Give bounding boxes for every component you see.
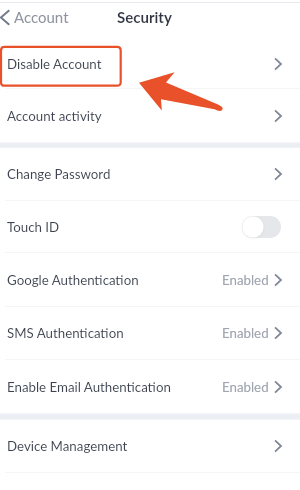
staticText: Google Authentication	[7, 272, 139, 288]
button[interactable]: Enable Email Authentication	[0, 360, 300, 413]
button[interactable]: SMS Authentication	[0, 307, 300, 359]
staticText: Security	[117, 8, 172, 26]
button[interactable]: Touch ID	[0, 201, 300, 252]
staticText: Disable Account	[7, 56, 102, 72]
staticText: Touch ID	[7, 219, 60, 235]
button[interactable]: Touch ID toggle	[242, 216, 281, 238]
staticText: Account activity	[7, 108, 102, 124]
staticText: Enable Email Authentication	[7, 379, 171, 395]
button[interactable]: Account activity	[0, 89, 300, 142]
staticText: Change Password	[7, 166, 111, 182]
staticText: Enabled	[222, 379, 269, 395]
button[interactable]: Account	[0, 6, 75, 28]
staticText: Account	[14, 8, 69, 26]
button[interactable]: Change Password	[0, 148, 300, 200]
button[interactable]: Google Authentication	[0, 253, 300, 306]
staticText: Enabled	[222, 325, 269, 341]
button[interactable]: Device Management	[0, 420, 300, 472]
staticText: Enabled	[222, 272, 269, 288]
button[interactable]: Disable Account	[0, 40, 300, 88]
staticText: SMS Authentication	[7, 325, 124, 341]
staticText: Device Management	[7, 438, 128, 454]
